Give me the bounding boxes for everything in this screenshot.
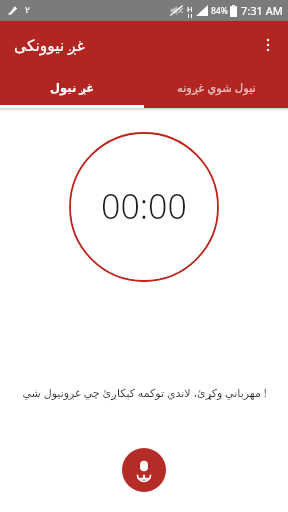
- staticText: 7:31 AM: [241, 3, 283, 18]
- staticText: 84%: [211, 5, 228, 17]
- staticText: غږ نیول: [50, 80, 95, 96]
- button[interactable]: غږ نیول: [0, 68, 144, 108]
- button[interactable]: More options: [248, 25, 288, 65]
- staticText: مهرباني وکړئ، لاندي توکمه کېکاږئ چي غږون…: [22, 385, 267, 400]
- staticText: H: [187, 4, 193, 14]
- staticText: ۲: [25, 5, 30, 15]
- button[interactable]: Record audio: [122, 448, 166, 492]
- staticText: غږ نیوونکی: [14, 34, 85, 55]
- staticText: نیول شوي غږونه: [177, 80, 256, 96]
- staticText: 00:00: [101, 183, 187, 229]
- button[interactable]: نیول شوي غږونه: [144, 68, 288, 108]
